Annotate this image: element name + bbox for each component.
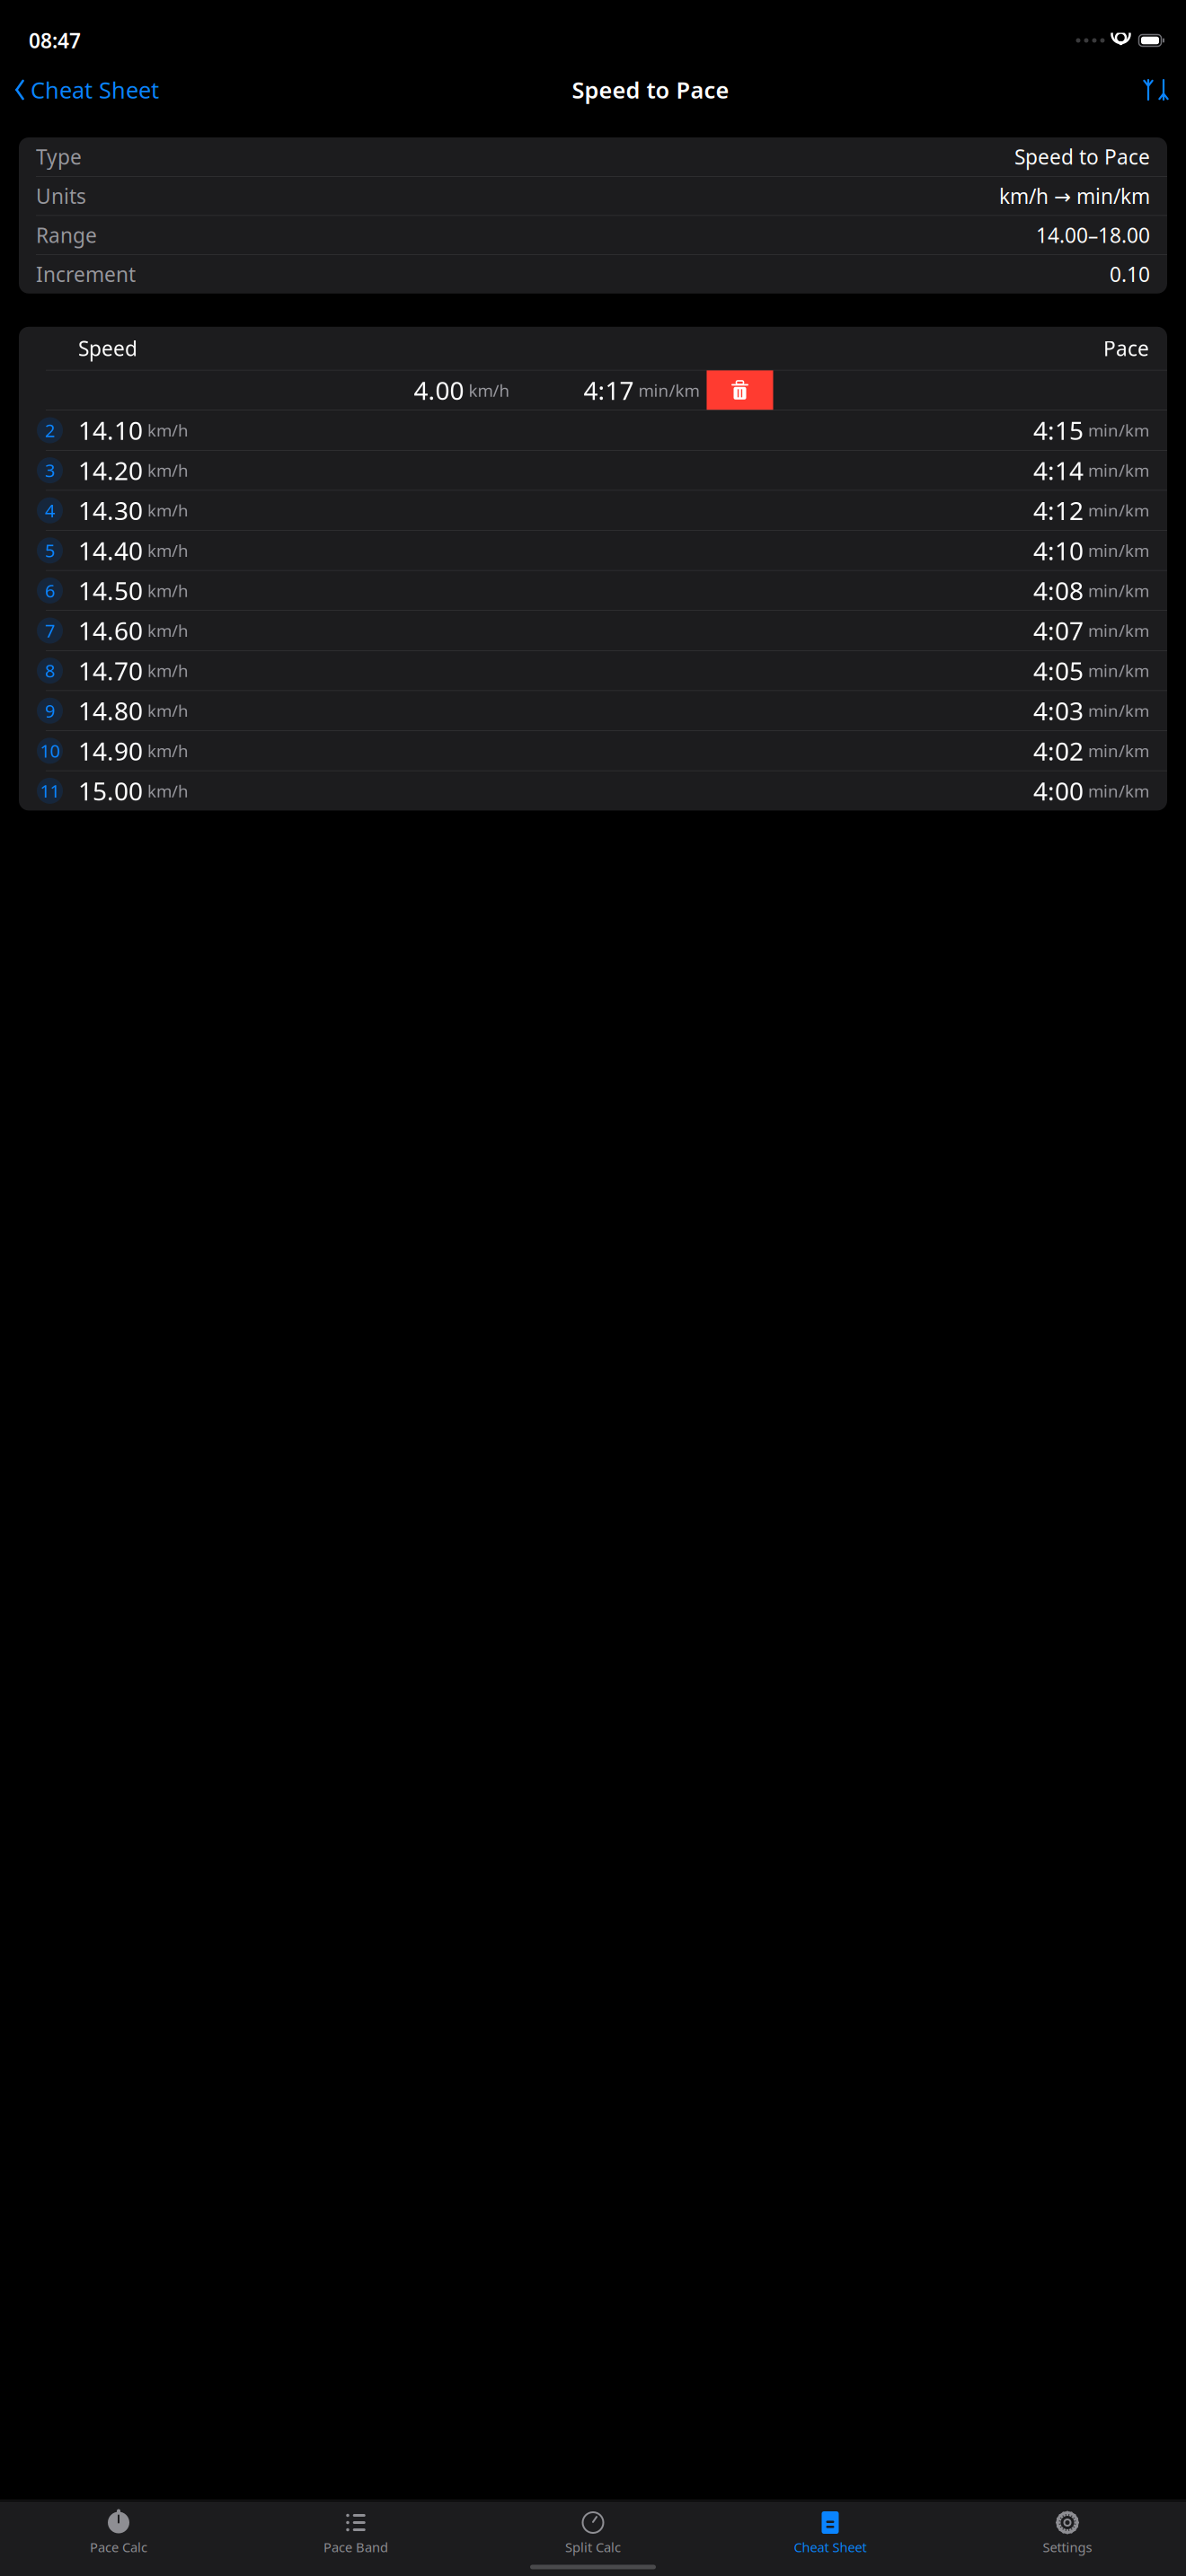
button[interactable]: 2 — [19, 410, 1167, 450]
button[interactable]: 11 — [19, 771, 1167, 811]
staticText: min/km — [1084, 499, 1149, 521]
staticText: 4:02 — [1033, 734, 1084, 767]
staticText: min/km — [1084, 740, 1149, 762]
staticText: 14.30 — [78, 494, 143, 527]
button[interactable]: 10 — [19, 731, 1167, 770]
staticText: min/km — [1084, 419, 1149, 441]
staticText: Type — [36, 143, 82, 170]
staticText: 14.20 — [78, 454, 143, 487]
staticText: min/km — [1084, 539, 1149, 562]
staticText: min/km — [1084, 700, 1149, 722]
staticText: 4:10 — [1033, 534, 1084, 567]
staticText: km/h — [143, 659, 189, 682]
staticText: 4:00 — [1033, 774, 1084, 807]
staticText: min/km — [1084, 579, 1149, 602]
button[interactable]: Pace Calc — [0, 2509, 237, 2558]
staticText: 14.90 — [78, 734, 143, 767]
staticText: 4:17 — [584, 373, 634, 407]
staticText: km/h → min/km — [999, 182, 1150, 209]
staticText: 4 — [45, 498, 55, 522]
staticText: 14.80 — [78, 694, 143, 727]
staticText: Cheat Sheet — [31, 75, 159, 105]
staticText: km/h — [143, 459, 189, 481]
staticText: Pace Band — [323, 2538, 388, 2556]
button[interactable]: 9 — [19, 691, 1167, 730]
button[interactable]: Delete — [707, 370, 773, 410]
staticText: km/h — [143, 740, 189, 762]
staticText: 14.70 — [78, 654, 143, 687]
staticText: km/h — [143, 539, 189, 562]
staticText: min/km — [1084, 780, 1149, 802]
staticText: 8 — [45, 659, 55, 683]
staticText: min/km — [634, 379, 699, 401]
button[interactable]: 8 — [19, 651, 1167, 690]
staticText: 08:47 — [29, 27, 81, 54]
staticText: 11 — [40, 779, 60, 803]
staticText: Settings — [1043, 2538, 1092, 2556]
button[interactable]: Cheat Sheet — [7, 69, 159, 110]
staticText: min/km — [1084, 619, 1149, 642]
button[interactable]: Cheat Sheet — [712, 2509, 949, 2558]
staticText: 4.00 — [414, 373, 464, 407]
staticText: 3 — [45, 458, 55, 482]
staticText: Units — [36, 182, 86, 209]
staticText: 4:15 — [1033, 414, 1084, 447]
staticText: km/h — [143, 700, 189, 722]
staticText: Increment — [36, 261, 136, 288]
staticText: 14.10 — [78, 414, 143, 447]
staticText: 14.40 — [78, 534, 143, 567]
button[interactable]: 6 — [19, 571, 1167, 610]
button[interactable]: Pace Band — [237, 2509, 474, 2558]
button[interactable]: 7 — [19, 611, 1167, 650]
button[interactable]: Sort — [1142, 73, 1179, 107]
staticText: Range — [36, 221, 97, 249]
staticText: 4:08 — [1033, 574, 1084, 607]
staticText: km/h — [143, 579, 189, 602]
staticText: 4:07 — [1033, 614, 1084, 647]
staticText: 4:03 — [1033, 694, 1084, 727]
staticText: Speed to Pace — [572, 75, 729, 105]
staticText: 6 — [45, 579, 55, 602]
staticText: 0.10 — [1110, 261, 1150, 288]
button[interactable]: Settings — [949, 2509, 1186, 2558]
staticText: 4:14 — [1033, 454, 1084, 487]
button[interactable]: 3 — [19, 451, 1167, 490]
staticText: 7 — [45, 619, 55, 642]
staticText: km/h — [143, 419, 189, 441]
staticText: km/h — [464, 379, 510, 401]
staticText: 2 — [45, 418, 55, 442]
staticText: Speed to Pace — [1014, 143, 1150, 170]
staticText: 4:05 — [1033, 654, 1084, 687]
staticText: 4:12 — [1033, 494, 1084, 527]
button[interactable]: 4 — [19, 491, 1167, 530]
staticText: 15.00 — [78, 774, 143, 807]
staticText: 14.60 — [78, 614, 143, 647]
staticText: km/h — [143, 619, 189, 642]
staticText: km/h — [143, 499, 189, 521]
staticText: Split Calc — [565, 2538, 621, 2556]
staticText: 10 — [40, 739, 60, 763]
staticText: Pace — [1103, 335, 1149, 362]
staticText: 14.00–18.00 — [1036, 221, 1150, 249]
staticText: 14.50 — [78, 574, 143, 607]
staticText: 5 — [45, 538, 55, 562]
staticText: min/km — [1084, 659, 1149, 682]
staticText: Cheat Sheet — [794, 2538, 867, 2556]
staticText: min/km — [1084, 459, 1149, 481]
button[interactable]: Split Calc — [474, 2509, 712, 2558]
staticText: km/h — [143, 780, 189, 802]
button[interactable]: 5 — [19, 531, 1167, 570]
staticText: 9 — [45, 699, 55, 723]
staticText: Pace Calc — [90, 2538, 147, 2556]
staticText: Speed — [78, 335, 137, 362]
